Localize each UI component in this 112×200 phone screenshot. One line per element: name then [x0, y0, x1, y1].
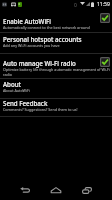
button[interactable]: Toggle setting: [100, 13, 110, 23]
button[interactable]: Send Feedback: [0, 98, 112, 117]
button[interactable]: Recent apps: [70, 174, 104, 200]
staticText: 0: [74, 2, 77, 9]
staticText: 11:59: [97, 1, 110, 8]
staticText: Comments? Suggestions? Send them to us!: [3, 107, 78, 112]
staticText: Personal hotspot accounts: [3, 35, 82, 43]
button[interactable]: Personal hotspot accounts: [0, 33, 112, 54]
button[interactable]: Home: [39, 174, 73, 200]
staticText: Send Feedback: [3, 99, 48, 107]
button[interactable]: About: [0, 79, 112, 99]
button[interactable]: Auto manage Wi-Fi radio: [0, 54, 112, 79]
staticText: Automatically connect to the best networ…: [3, 25, 90, 30]
staticText: Add any Wi-Fi accounts you have: [3, 43, 60, 48]
staticText: About: [3, 80, 21, 88]
staticText: About AutoWiFi: [3, 88, 30, 93]
button[interactable]: Back: [8, 174, 42, 200]
staticText: Optimize battery life through automatic …: [3, 67, 112, 77]
staticText: Enable AutoWiFi: [3, 17, 52, 25]
button[interactable]: Enable AutoWiFi: [0, 10, 112, 33]
button[interactable]: Toggle setting: [100, 57, 110, 67]
staticText: Auto manage Wi-Fi radio: [3, 59, 76, 67]
